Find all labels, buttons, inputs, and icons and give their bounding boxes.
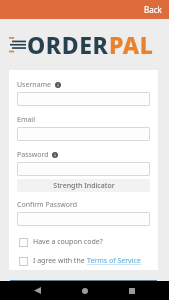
staticText: Back xyxy=(144,4,162,15)
button[interactable] xyxy=(17,162,150,176)
staticText: Have a coupon code? xyxy=(33,237,103,247)
button[interactable] xyxy=(17,92,150,106)
button[interactable]: Terms of Service xyxy=(87,256,141,266)
button[interactable]: Back xyxy=(27,281,47,300)
staticText: Strength Indicator xyxy=(53,181,115,191)
staticText: Password xyxy=(17,150,49,160)
button[interactable]: Have a coupon code? xyxy=(17,237,150,247)
staticText: Confirm Password xyxy=(17,200,78,210)
button[interactable]: Information xyxy=(52,152,58,158)
button[interactable]: Information xyxy=(55,82,61,88)
button[interactable]: Back xyxy=(137,2,169,17)
button[interactable] xyxy=(17,127,150,141)
staticText: Email xyxy=(17,115,35,125)
staticText: PAL xyxy=(109,29,154,60)
button[interactable]: Recent apps xyxy=(122,281,142,300)
button[interactable]: Strength Indicator xyxy=(17,179,150,192)
button[interactable]: I agree with the xyxy=(17,256,150,266)
button[interactable] xyxy=(17,212,150,226)
staticText: I agree with the xyxy=(33,256,87,266)
staticText: ORDER xyxy=(27,29,109,60)
staticText: Username xyxy=(17,80,52,90)
button[interactable]: Home xyxy=(75,281,95,300)
